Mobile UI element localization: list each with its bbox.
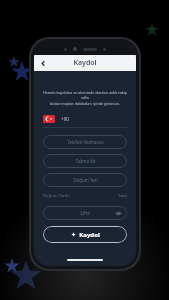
other: Show password (115, 210, 122, 217)
button[interactable]: Telefon Numarası (43, 135, 127, 149)
staticText: Kaydol (79, 231, 100, 239)
button[interactable]: Back (37, 57, 49, 69)
button[interactable]: Şifre (43, 206, 127, 220)
button[interactable]: Doğum Yeri (43, 173, 127, 187)
staticText: Şifre (80, 210, 90, 216)
button[interactable]: Doğum Tarihi (43, 193, 118, 199)
button[interactable]: Takma Ad (43, 154, 127, 168)
button[interactable]: Saat (118, 193, 127, 199)
staticText: Kaydol (73, 58, 97, 68)
staticText: Telefon Numarası (67, 139, 104, 145)
staticText: bütün maçları dakikaları içinde görünün. (43, 101, 127, 106)
staticText: +90 (61, 116, 69, 122)
staticText: Doğum Yeri (73, 177, 98, 183)
staticText: Saat (118, 193, 127, 199)
staticText: Takma Ad (75, 158, 96, 164)
staticText: Doğum Tarihi (43, 193, 70, 199)
staticText: Hemen kaydolun ve aleminde olanları anlı… (43, 90, 127, 100)
button[interactable]: Kaydol (43, 226, 127, 243)
button[interactable]: +90 (43, 115, 127, 123)
